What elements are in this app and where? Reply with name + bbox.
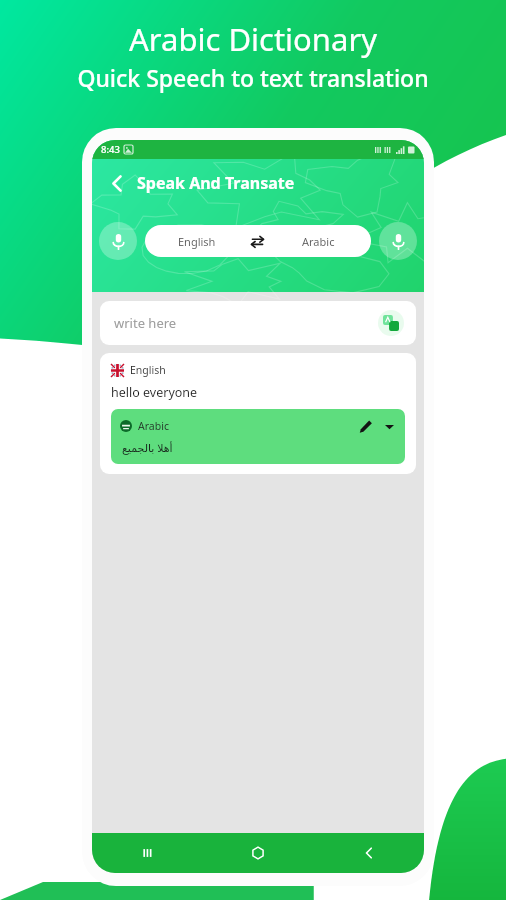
staticText: Quick Speech to text translation <box>77 62 429 93</box>
button[interactable]: Back <box>313 833 424 873</box>
staticText: أهلا بالجميع <box>122 440 173 455</box>
button[interactable]: More options <box>382 419 396 433</box>
button[interactable]: Edit <box>356 417 374 435</box>
staticText: Speak And Transate <box>137 172 295 194</box>
button[interactable]: Microphone <box>379 222 417 260</box>
staticText: Arabic <box>302 234 335 249</box>
button[interactable]: English <box>100 353 416 474</box>
button[interactable]: write here <box>100 301 416 345</box>
staticText: English <box>178 234 216 249</box>
button[interactable]: Back <box>102 168 132 198</box>
staticText: Arabic Dictionary <box>129 18 377 60</box>
staticText: English <box>130 363 166 377</box>
button[interactable]: Translate <box>378 310 404 336</box>
button[interactable]: Home <box>202 833 313 873</box>
staticText: write here <box>114 314 177 332</box>
button[interactable]: Arabic <box>111 409 405 464</box>
button[interactable]: Recents <box>92 833 202 873</box>
button[interactable]: English <box>145 225 371 257</box>
staticText: hello everyone <box>111 384 198 401</box>
staticText: 8:43 <box>101 143 120 156</box>
button[interactable]: Microphone <box>99 222 137 260</box>
staticText: Arabic <box>138 419 169 433</box>
